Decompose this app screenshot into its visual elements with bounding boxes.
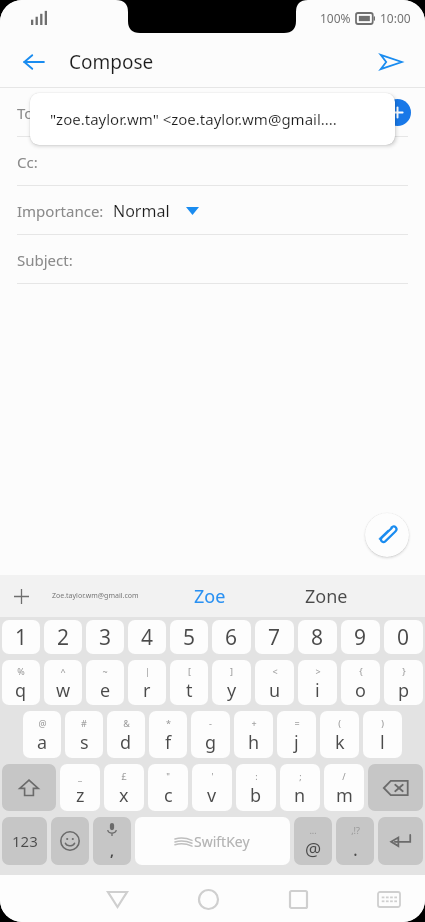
button[interactable]: & — [107, 711, 145, 758]
staticText: l — [380, 730, 385, 755]
button[interactable]: Recents — [276, 877, 320, 921]
button[interactable]: 3 — [86, 620, 124, 654]
button[interactable]: _ — [60, 764, 100, 811]
staticText: Subject: — [17, 250, 73, 270]
button[interactable]: 4 — [128, 620, 166, 654]
staticText: @ — [305, 837, 322, 862]
button[interactable]: , — [93, 817, 131, 865]
staticText: Compose — [69, 49, 154, 75]
button[interactable]: - — [191, 711, 230, 758]
button[interactable]: Back — [95, 877, 139, 921]
button[interactable]: Cc: — [0, 137, 425, 186]
button[interactable]: " — [148, 764, 188, 811]
button[interactable]: ( — [320, 711, 359, 758]
staticText: "zoe.taylor.wm" <zoe.taylor.wm@gmail.... — [50, 109, 337, 129]
button[interactable]: ; — [280, 764, 320, 811]
staticText: r — [143, 678, 151, 703]
button[interactable]: ] — [212, 660, 251, 705]
button[interactable]: 5 — [170, 620, 208, 654]
button[interactable]: [ — [170, 660, 208, 705]
staticText: Cc: — [17, 152, 38, 172]
button[interactable]: ) — [363, 711, 402, 758]
button[interactable]: ,!? — [336, 817, 374, 865]
button[interactable]: Zone — [305, 584, 348, 609]
button[interactable]: 1 — [2, 620, 40, 654]
button[interactable]: Home — [186, 877, 230, 921]
staticText: p — [398, 678, 410, 703]
button[interactable]: = — [277, 711, 316, 758]
button[interactable]: Subject: — [0, 235, 425, 284]
button[interactable]: ~ — [86, 660, 124, 705]
staticText: " — [166, 770, 170, 782]
staticText: k — [335, 730, 345, 755]
staticText: 7 — [268, 623, 281, 652]
button[interactable]: @ — [23, 711, 61, 758]
button[interactable]: { — [341, 660, 380, 705]
button[interactable]: ... — [294, 817, 332, 865]
button[interactable]: Back — [14, 42, 54, 82]
staticText: { — [359, 665, 363, 677]
button[interactable]: Attach file — [365, 513, 409, 557]
staticText: b — [250, 783, 262, 808]
staticText: d — [120, 730, 132, 755]
button[interactable]: Space — [135, 817, 290, 865]
button[interactable]: 6 — [212, 620, 251, 654]
button[interactable]: * — [149, 711, 187, 758]
staticText: + — [251, 717, 257, 729]
button[interactable]: 123 — [2, 817, 47, 865]
staticText: | — [145, 665, 150, 677]
button[interactable]: Importance: — [0, 186, 425, 235]
staticText: Zoe — [44, 103, 71, 123]
other: Add word — [14, 589, 29, 604]
button[interactable]: | — [128, 660, 166, 705]
staticText: - — [209, 717, 212, 729]
button[interactable]: 9 — [341, 620, 380, 654]
staticText: m — [336, 783, 353, 808]
button[interactable]: > — [298, 660, 337, 705]
staticText: SwiftKey — [194, 832, 250, 851]
button[interactable]: 0 — [384, 620, 423, 654]
button[interactable]: Emoji — [51, 817, 89, 865]
button[interactable]: Backspace — [368, 764, 423, 811]
button[interactable]: 2 — [44, 620, 82, 654]
button[interactable]: } — [384, 660, 423, 705]
button[interactable]: Add recipient — [384, 99, 411, 126]
button[interactable]: 7 — [255, 620, 294, 654]
button[interactable]: Send — [369, 40, 413, 84]
button[interactable]: ' — [192, 764, 232, 811]
staticText: ( — [338, 717, 341, 729]
button[interactable]: < — [255, 660, 294, 705]
button[interactable]: : — [236, 764, 276, 811]
button[interactable]: % — [2, 660, 40, 705]
staticText: # — [81, 717, 87, 729]
button[interactable]: Zoe — [194, 584, 226, 609]
staticText: s — [80, 730, 89, 755]
staticText: u — [269, 678, 281, 703]
button[interactable]: Shift — [2, 764, 56, 811]
staticText: x — [119, 783, 129, 808]
button[interactable]: "zoe.taylor.wm" <zoe.taylor.wm@gmail.... — [30, 93, 395, 145]
staticText: 9 — [354, 623, 367, 652]
button[interactable]: Hide keyboard — [367, 877, 411, 921]
staticText: t — [186, 678, 193, 703]
staticText: 123 — [12, 831, 38, 851]
staticText: 8 — [311, 623, 324, 652]
button[interactable]: ^ — [44, 660, 82, 705]
staticText: : — [255, 770, 258, 782]
staticText: ^ — [60, 665, 66, 677]
staticText: . — [353, 837, 358, 862]
button[interactable]: To: — [0, 88, 425, 137]
button[interactable]: Zoe.taylor.wm@gmail.com — [52, 591, 139, 601]
button[interactable]: Enter — [378, 817, 423, 865]
staticText: c — [164, 783, 173, 808]
button[interactable]: £ — [104, 764, 144, 811]
button[interactable]: / — [324, 764, 364, 811]
button[interactable]: 8 — [298, 620, 337, 654]
button[interactable]: # — [65, 711, 103, 758]
staticText: y — [227, 678, 237, 703]
staticText: & — [123, 717, 130, 729]
staticText: ~ — [102, 665, 108, 677]
button[interactable]: + — [234, 711, 273, 758]
staticText: a — [37, 730, 48, 755]
staticText: Normal — [113, 200, 170, 222]
